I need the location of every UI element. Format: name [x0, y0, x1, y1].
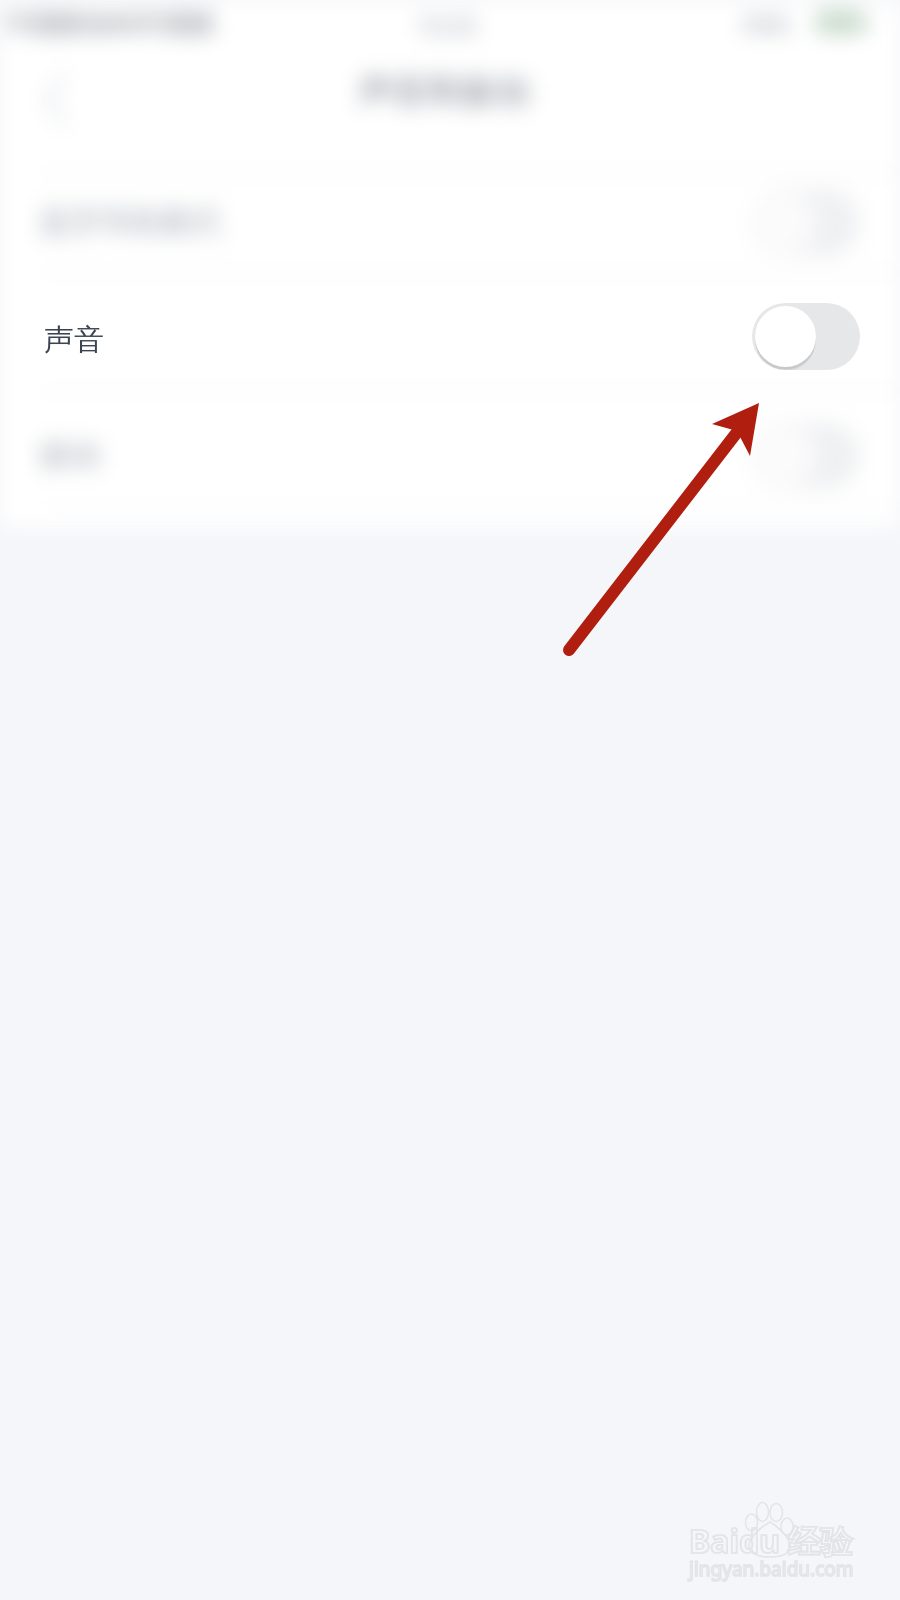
staticText: 振动	[40, 436, 100, 474]
staticText: 声音和振动	[359, 70, 529, 113]
staticText: 94%	[742, 7, 790, 40]
button[interactable]	[0, 173, 900, 271]
button[interactable]	[0, 391, 900, 507]
staticText: 蓝牙耳机模式	[40, 203, 220, 241]
staticText: jingyan.baidu.com	[689, 1556, 854, 1582]
staticText: 中国移动4G中国移	[7, 5, 215, 39]
staticText: 10:25	[416, 8, 478, 41]
staticText: Baidu 经验	[689, 1519, 853, 1563]
staticText: 声音	[44, 321, 104, 359]
button[interactable]: Sound toggle	[752, 303, 860, 370]
button[interactable]: 声音	[0, 287, 900, 387]
